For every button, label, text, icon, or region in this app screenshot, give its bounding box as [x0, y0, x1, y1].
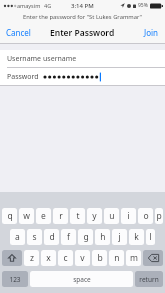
staticText: x	[46, 252, 51, 264]
button[interactable]: e	[36, 208, 51, 224]
staticText: Enter the password for "St Lukes Grammar…	[23, 13, 142, 21]
staticText: q	[7, 210, 13, 222]
button[interactable]: v	[75, 250, 90, 266]
staticText: 95%	[138, 2, 148, 9]
button[interactable]: c	[58, 250, 73, 266]
button[interactable]: f	[61, 229, 76, 245]
staticText: c	[63, 252, 68, 264]
staticText: Join	[144, 27, 159, 38]
staticText: space	[73, 275, 91, 284]
staticText: 4G	[44, 2, 52, 9]
staticText: i	[127, 210, 130, 222]
button[interactable]: h	[95, 229, 110, 245]
button[interactable]: y	[87, 208, 102, 224]
button[interactable]: d	[44, 229, 59, 245]
staticText: Username	[7, 54, 42, 64]
button[interactable]: b	[92, 250, 107, 266]
staticText: 123	[9, 275, 21, 284]
button[interactable]: l	[146, 229, 155, 245]
button[interactable]: i	[121, 208, 136, 224]
staticText: a	[15, 231, 20, 243]
staticText: f	[67, 231, 70, 243]
button[interactable]: q	[2, 208, 17, 224]
button[interactable]: space	[30, 271, 133, 287]
button[interactable]: Username	[0, 50, 165, 67]
staticText: w	[23, 210, 30, 222]
staticText: j	[118, 231, 121, 243]
button[interactable]: s	[27, 229, 42, 245]
staticText: o	[143, 210, 149, 222]
button[interactable]: u	[104, 208, 119, 224]
staticText: l	[149, 231, 152, 243]
button[interactable]: r	[53, 208, 68, 224]
button[interactable]: Password	[0, 68, 165, 85]
staticText: n	[114, 252, 120, 264]
button[interactable]: n	[109, 250, 124, 266]
staticText: r	[59, 210, 63, 222]
staticText: t	[76, 210, 80, 222]
button[interactable]: t	[70, 208, 85, 224]
staticText: Enter Password	[50, 27, 115, 39]
staticText: m	[130, 252, 138, 264]
button[interactable]: p	[155, 208, 163, 224]
staticText: s	[32, 231, 37, 243]
staticText: Cancel	[6, 27, 31, 38]
staticText: g	[83, 231, 89, 243]
button[interactable]: return	[135, 271, 163, 287]
staticText: return	[139, 275, 159, 284]
button[interactable]: Cancel	[0, 22, 37, 43]
button[interactable]: j	[112, 229, 127, 245]
staticText: y	[92, 210, 97, 222]
button[interactable]: Join	[138, 22, 165, 43]
button[interactable]: 123	[2, 271, 28, 287]
button[interactable]: Delete	[143, 250, 163, 266]
staticText: p	[156, 210, 162, 222]
staticText: 3:14 PM	[71, 2, 94, 10]
staticText: h	[100, 231, 106, 243]
button[interactable]: x	[41, 250, 56, 266]
staticText: u	[109, 210, 115, 222]
button[interactable]: Shift	[2, 250, 22, 266]
staticText: amaysim	[17, 2, 41, 9]
button[interactable]: w	[19, 208, 34, 224]
staticText: b	[97, 252, 103, 264]
button[interactable]: z	[24, 250, 39, 266]
button[interactable]: k	[129, 229, 144, 245]
button[interactable]: m	[126, 250, 141, 266]
staticText: Password	[7, 72, 39, 82]
staticText: k	[134, 231, 139, 243]
staticText: d	[49, 231, 55, 243]
staticText: username	[43, 54, 77, 64]
button[interactable]: a	[10, 229, 25, 245]
staticText: v	[80, 252, 85, 264]
button[interactable]: o	[138, 208, 153, 224]
staticText: e	[41, 210, 46, 222]
staticText: z	[30, 252, 34, 264]
button[interactable]: g	[78, 229, 93, 245]
